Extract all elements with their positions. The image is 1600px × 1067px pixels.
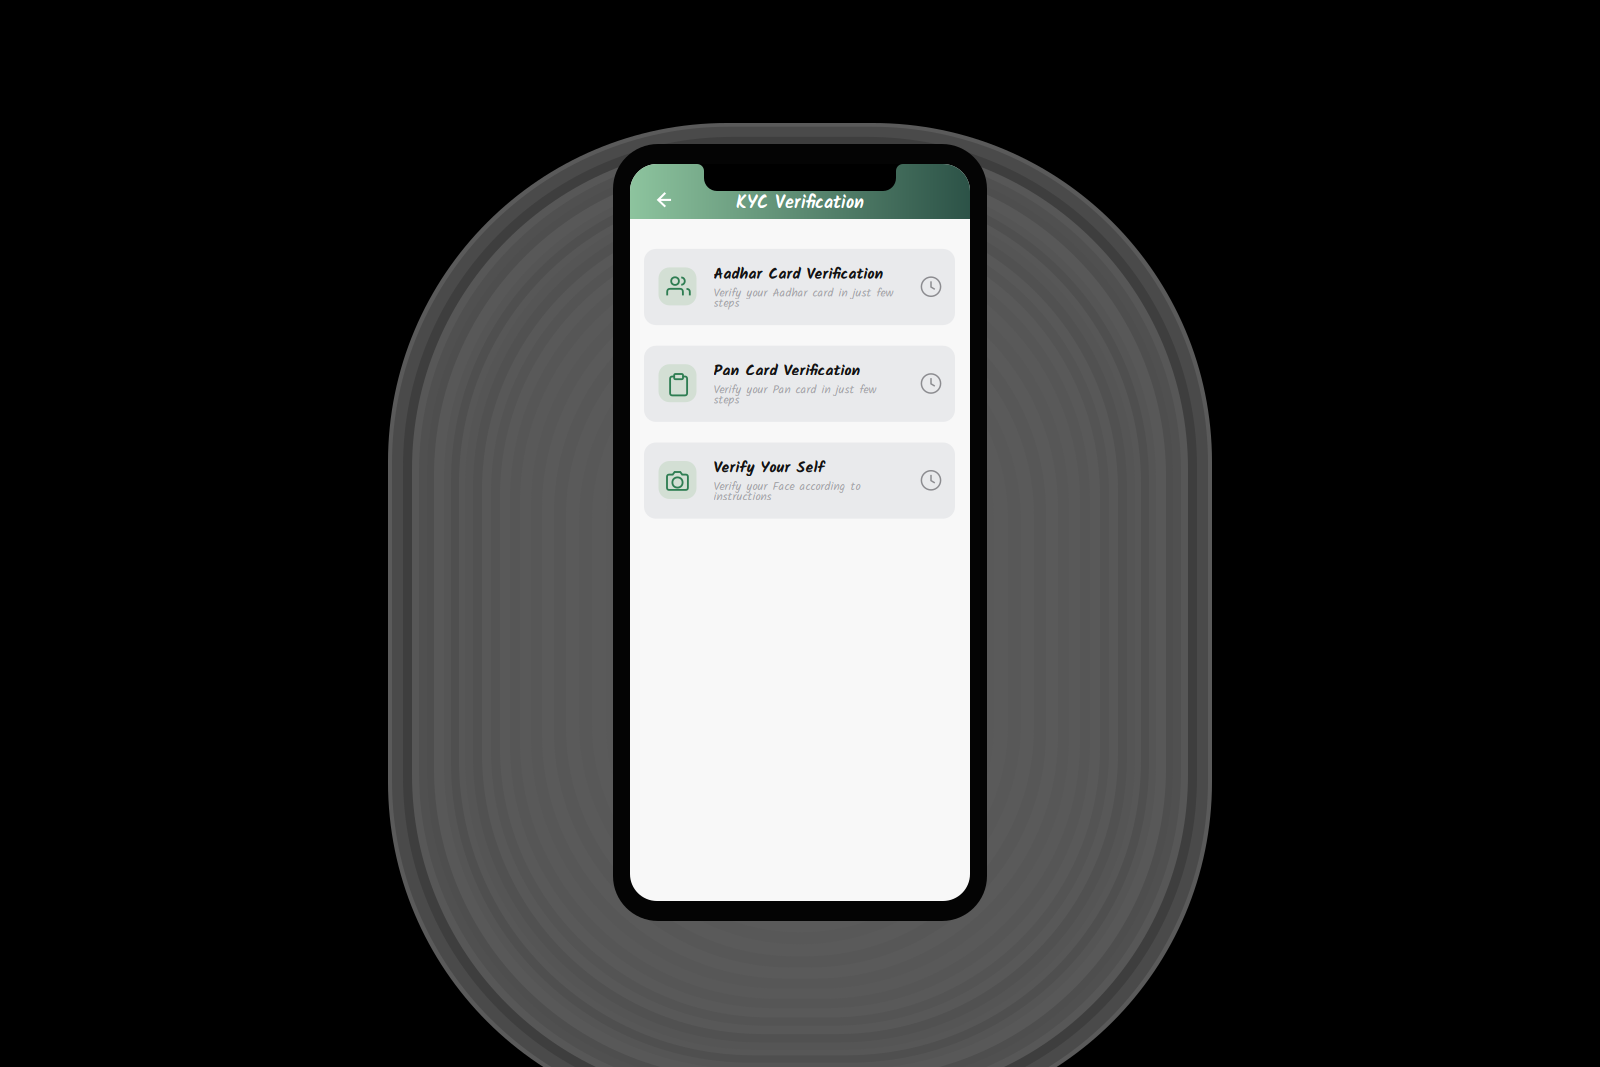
staticText: steps [713,391,739,410]
button[interactable]: Pan Card Verification [644,346,955,422]
button[interactable]: Aadhar Card Verification [644,249,955,325]
button[interactable]: Verify Your Self [644,442,955,519]
staticText: steps [713,294,739,313]
staticText: instructions [713,488,771,507]
staticText: Verify your Aadhar card in just few [713,284,893,303]
staticText: Verify your Face according to [713,478,860,496]
staticText: Aadhar Card Verification [713,262,883,287]
staticText: Verify Your Self [713,456,824,481]
staticText: Pan Card Verification [713,359,860,384]
staticText: KYC Verification [736,189,864,218]
button[interactable]: Back [646,181,684,219]
staticText: Verify your Pan card in just few [713,381,876,399]
